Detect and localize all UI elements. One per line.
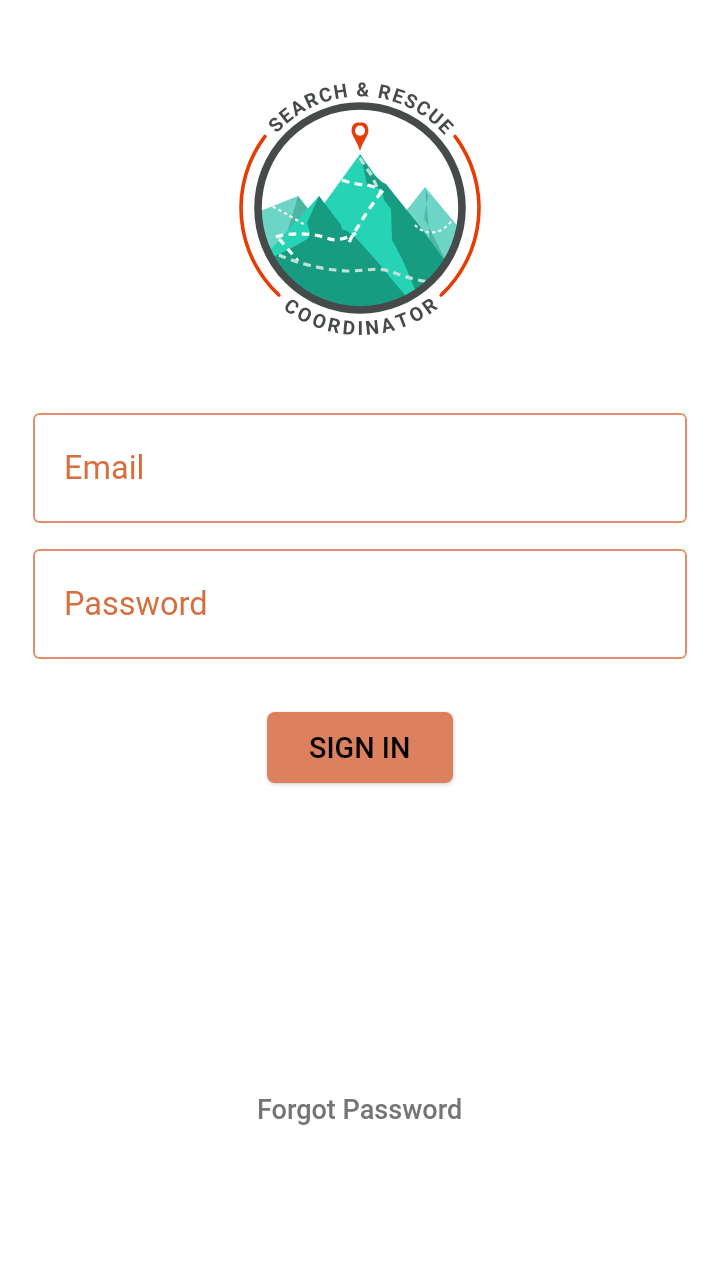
button[interactable]: Email bbox=[33, 413, 687, 523]
staticText: Email bbox=[64, 449, 145, 487]
button[interactable]: Password bbox=[33, 549, 687, 659]
staticText: Password bbox=[64, 585, 208, 623]
staticText: SIGN IN bbox=[309, 731, 411, 765]
button[interactable]: SIGN IN bbox=[267, 712, 453, 783]
button[interactable]: Forgot Password bbox=[257, 1094, 463, 1126]
staticText: Forgot Password bbox=[257, 1094, 463, 1126]
